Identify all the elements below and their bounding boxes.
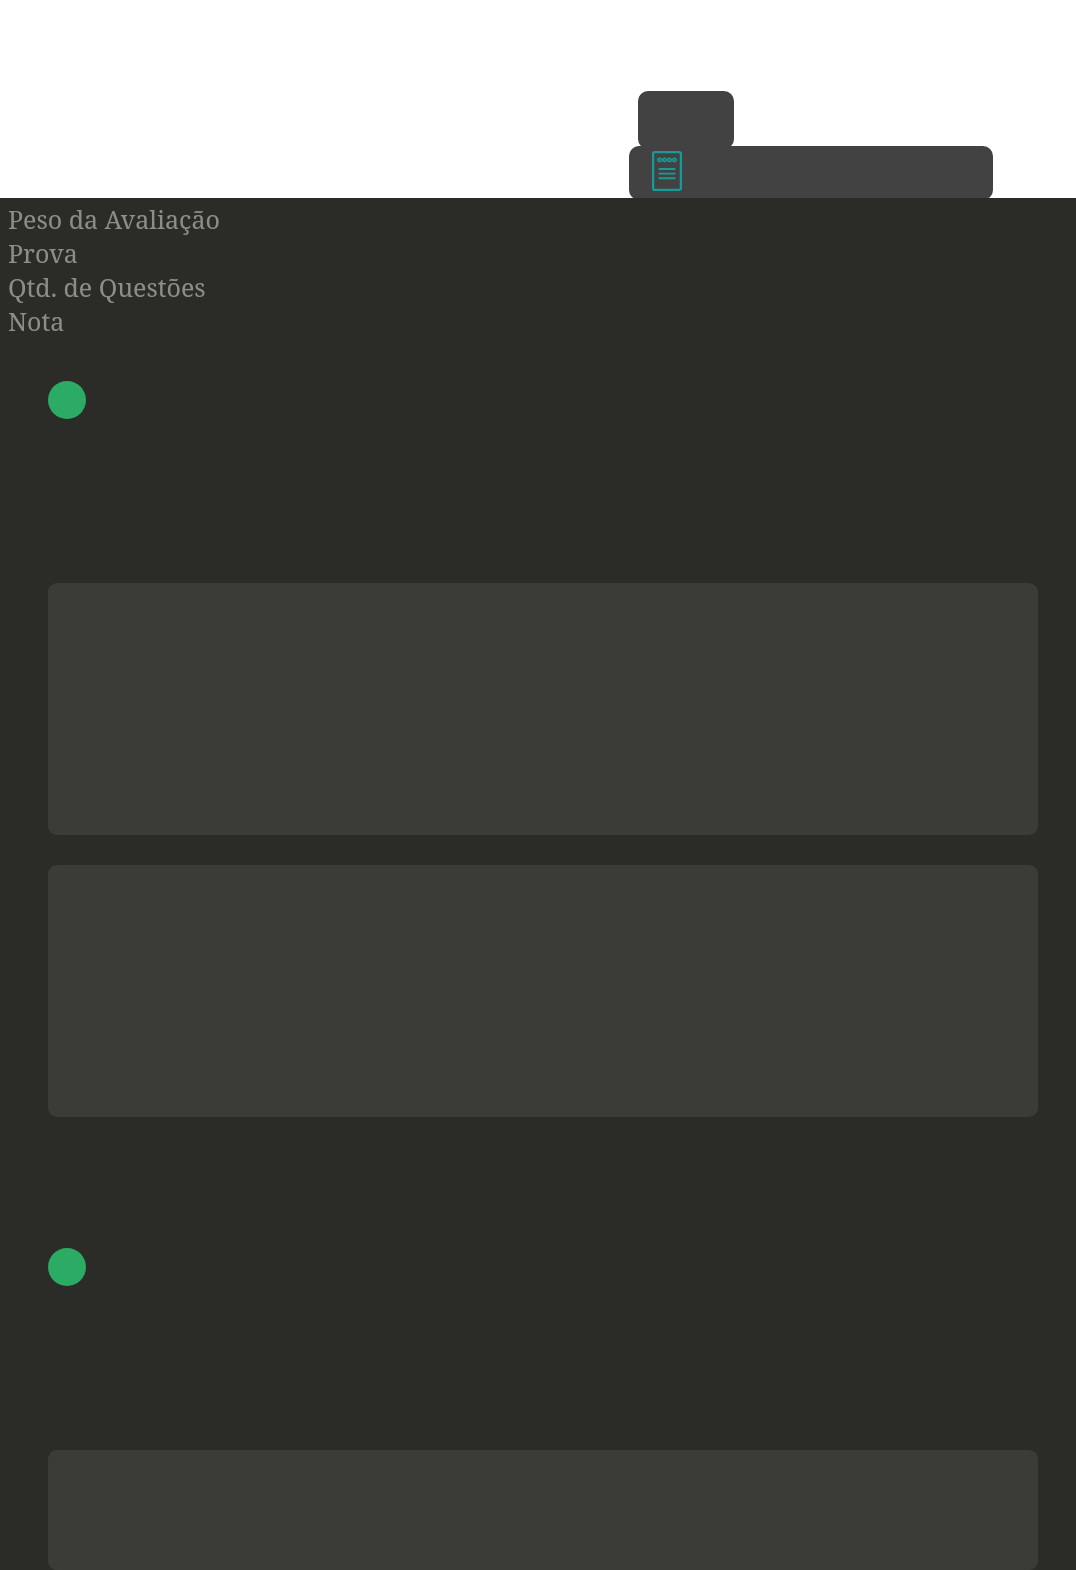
staticText: Nota [8, 304, 65, 338]
button[interactable]: Evaluation sheet [629, 146, 993, 200]
button[interactable]: Status [12, 1211, 1076, 1570]
staticText: Prova [8, 236, 78, 270]
button[interactable]: Popup panel [638, 91, 734, 149]
button[interactable]: Status [48, 1248, 86, 1286]
staticText: Peso da Avaliação [8, 202, 220, 236]
staticText: Qtd. de Questões [8, 270, 206, 304]
button[interactable]: Status [48, 381, 86, 419]
button[interactable]: Status [12, 344, 1076, 1210]
